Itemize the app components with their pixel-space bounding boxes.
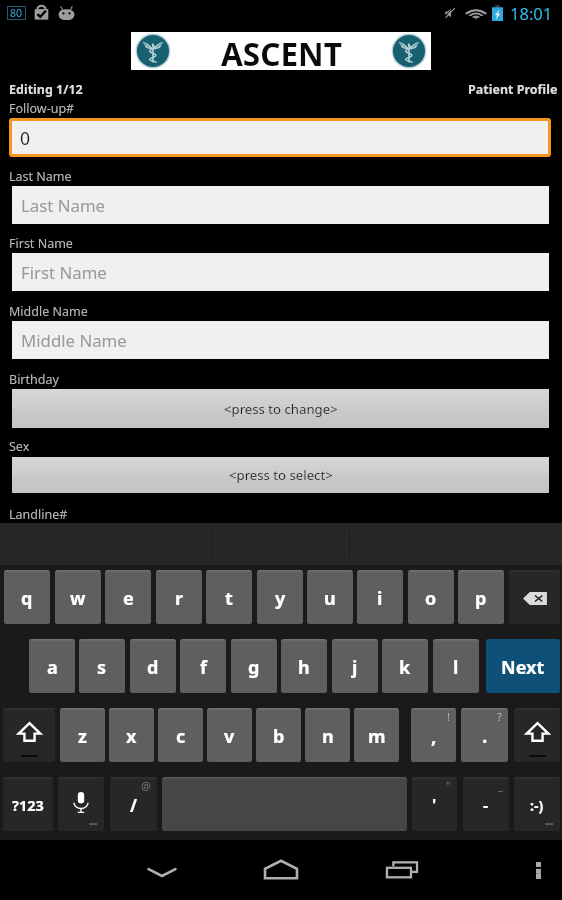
staticText: w [70, 586, 86, 611]
button[interactable]: Hide keyboard [132, 842, 192, 898]
button[interactable]: Backspace [509, 570, 560, 624]
button[interactable]: <press to change> [12, 389, 549, 428]
staticText: <press to select> [229, 466, 333, 484]
staticText: Next [501, 655, 545, 680]
staticText: r [175, 586, 184, 611]
button[interactable]: s [79, 639, 125, 693]
staticText: a [47, 655, 58, 680]
button[interactable]: e [105, 570, 151, 624]
button[interactable]: Next [486, 639, 560, 693]
button[interactable]: k [382, 639, 428, 693]
staticText: 0 [20, 126, 31, 150]
button[interactable]: l [433, 639, 479, 693]
staticText: y [275, 586, 286, 611]
staticText: Follow-up# [9, 100, 75, 117]
staticText: m [368, 724, 386, 749]
button[interactable]: r [156, 570, 202, 624]
button[interactable]: i [357, 570, 403, 624]
staticText: q [21, 586, 33, 611]
staticText: . [482, 723, 488, 749]
button[interactable]: , [411, 708, 456, 762]
button[interactable]: Shift [514, 708, 560, 762]
staticText: h [298, 655, 310, 680]
staticText: ? [497, 709, 502, 724]
staticText: u [324, 586, 336, 611]
staticText: Sex [9, 438, 30, 455]
staticText: ?123 [12, 795, 44, 815]
staticText: ... [89, 814, 98, 828]
staticText: Patient Profile [468, 81, 558, 98]
staticText: First Name [21, 261, 107, 284]
button[interactable]: Shift [3, 708, 55, 762]
button[interactable]: q [4, 570, 50, 624]
staticText: ... [545, 814, 554, 828]
button[interactable]: <press to select> [12, 457, 549, 493]
button[interactable]: n [305, 708, 350, 762]
button[interactable]: o [408, 570, 454, 624]
staticText: n [322, 724, 334, 749]
button[interactable]: d [130, 639, 176, 693]
button[interactable]: g [231, 639, 277, 693]
button[interactable]: Home [251, 842, 311, 898]
staticText: j [352, 655, 358, 680]
staticText: s [97, 655, 107, 680]
staticText: First Name [9, 235, 73, 252]
staticText: v [224, 724, 235, 749]
staticText: Last Name [21, 194, 106, 217]
button[interactable]: 0 [12, 121, 548, 154]
button[interactable]: Middle Name [12, 321, 549, 359]
button[interactable]: a [29, 639, 75, 693]
button[interactable]: ?123 [3, 777, 53, 831]
staticText: ! [447, 709, 450, 724]
button[interactable]: w [55, 570, 101, 624]
button[interactable]: Last Name [12, 186, 549, 224]
button[interactable]: x [109, 708, 154, 762]
button[interactable]: p [458, 570, 504, 624]
button[interactable]: Recents [371, 842, 431, 898]
button[interactable]: u [307, 570, 353, 624]
staticText: z [78, 724, 87, 749]
staticText: e [123, 586, 134, 611]
staticText: i [377, 586, 383, 611]
button[interactable]: ASCENT [131, 32, 431, 70]
staticText: Landline# [9, 506, 68, 523]
staticText: _ [498, 778, 503, 793]
button[interactable]: :-) [514, 777, 560, 831]
staticText: l [453, 655, 459, 680]
button[interactable]: z [60, 708, 105, 762]
button[interactable]: m [354, 708, 399, 762]
staticText: , [431, 723, 437, 749]
button[interactable]: h [281, 639, 327, 693]
staticText: Middle Name [21, 329, 127, 352]
button[interactable]: Voice input [58, 777, 104, 831]
staticText: @ [141, 778, 151, 793]
staticText: 18:01 [510, 2, 553, 24]
button[interactable]: y [257, 570, 303, 624]
staticText: Birthday [9, 371, 59, 388]
button[interactable]: / [110, 777, 157, 831]
staticText: <press to change> [224, 400, 338, 418]
button[interactable]: t [206, 570, 252, 624]
button[interactable]: b [256, 708, 301, 762]
button[interactable]: ' [412, 777, 457, 831]
button[interactable]: c [158, 708, 203, 762]
button[interactable]: - [463, 777, 509, 831]
button[interactable]: More options [518, 842, 558, 898]
button[interactable]: f [180, 639, 226, 693]
staticText: k [399, 655, 411, 680]
staticText: x [126, 724, 137, 749]
button[interactable]: j [332, 639, 378, 693]
button[interactable]: . [461, 708, 508, 762]
button[interactable]: First Name [12, 253, 549, 291]
staticText: g [248, 655, 260, 680]
staticText: :-) [530, 796, 544, 815]
staticText: ' [432, 794, 437, 816]
staticText: c [176, 724, 186, 749]
staticText: / [130, 794, 138, 817]
button[interactable]: v [207, 708, 252, 762]
staticText: ASCENT [221, 32, 342, 70]
